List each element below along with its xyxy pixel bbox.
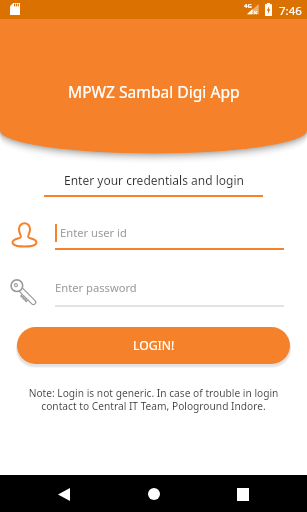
button[interactable]: Back — [46, 476, 82, 512]
other: User — [11, 220, 38, 248]
button[interactable]: Recent apps — [225, 476, 261, 512]
staticText: LOGIN! — [133, 337, 175, 354]
staticText: 7:46 — [279, 3, 302, 19]
other: Password — [10, 278, 37, 305]
staticText: Enter password — [55, 280, 137, 295]
staticText: Enter user id — [60, 225, 127, 240]
staticText: MPWZ Sambal Digi App — [68, 81, 240, 102]
button[interactable]: LOGIN! — [17, 327, 290, 364]
staticText: Note: Login is not generic. In case of t… — [22, 386, 285, 413]
staticText: Enter your credentials and login — [64, 172, 244, 188]
staticText: 4G — [244, 2, 252, 10]
button[interactable]: Home — [136, 476, 172, 512]
